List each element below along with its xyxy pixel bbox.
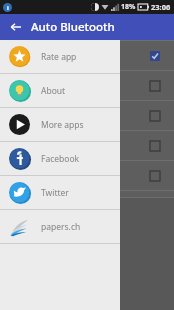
staticText: 23:06 [151,2,171,12]
button[interactable] [0,161,174,191]
button[interactable]: About [0,74,120,107]
button[interactable]: papers.ch [0,210,120,243]
button[interactable] [0,101,174,131]
button[interactable]: ate [0,131,174,161]
button[interactable]: Back [7,18,25,36]
button[interactable] [0,71,174,101]
staticText: papers.ch [41,221,81,233]
button[interactable] [0,41,174,71]
staticText: Twitter [41,187,69,199]
staticText: i [7,4,9,12]
staticText: Rate app [41,51,77,63]
staticText: 18% [121,2,136,12]
button[interactable]: More apps [0,108,120,141]
button[interactable]: Twitter [0,176,120,209]
staticText: About [41,85,66,97]
staticText: Auto Bluetooth [31,19,115,35]
button[interactable]: Facebook [0,142,120,175]
staticText: ate [106,141,118,152]
staticText: Facebook [41,153,80,165]
staticText: More apps [41,119,84,131]
button[interactable]: Rate app [0,40,120,73]
